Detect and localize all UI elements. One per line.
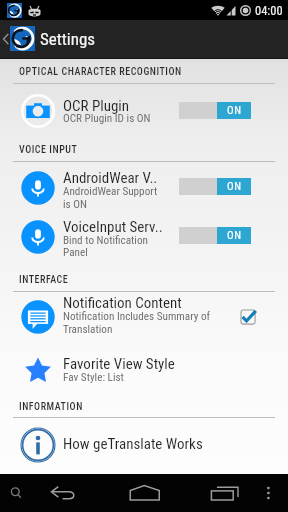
staticText: VoiceInput Serv.. — [63, 218, 163, 236]
staticText: OCR Plugin ID is ON — [63, 112, 151, 125]
button[interactable]: Home — [124, 474, 166, 512]
button[interactable] — [0, 211, 288, 261]
staticText: INTERFACE — [19, 274, 69, 286]
staticText: is ON — [63, 198, 87, 211]
staticText: OCR Plugin — [63, 97, 130, 115]
staticText: How geTranslate Works — [63, 435, 203, 453]
button[interactable]: Toggle setting — [179, 102, 251, 119]
button[interactable] — [0, 419, 288, 465]
button[interactable]: Navigate up — [0, 20, 288, 58]
staticText: Notification Content — [63, 294, 182, 312]
button[interactable] — [0, 163, 288, 211]
staticText: Fav Style: List — [63, 371, 124, 384]
button[interactable] — [0, 292, 288, 342]
staticText: AndroidWear V.. — [63, 169, 158, 187]
staticText: ON — [227, 180, 242, 193]
staticText: OPTICAL CHARACTER RECOGNITION — [19, 66, 182, 78]
staticText: 04:00 — [255, 3, 283, 18]
button[interactable]: Search — [0, 474, 40, 512]
staticText: AndroidWear Support — [63, 185, 158, 198]
button[interactable]: More options — [256, 474, 288, 512]
staticText: Panel — [63, 246, 88, 259]
button[interactable]: Toggle notification content — [233, 298, 263, 326]
staticText: ON — [227, 229, 242, 242]
button[interactable]: Toggle setting — [179, 227, 251, 244]
button[interactable] — [0, 345, 288, 395]
staticText: ON — [227, 104, 242, 117]
button[interactable]: Back — [44, 474, 84, 512]
staticText: Bind to Notification — [63, 234, 148, 247]
staticText: Settings — [40, 29, 96, 49]
staticText: VOICE INPUT — [19, 144, 78, 156]
button[interactable]: Toggle setting — [179, 178, 251, 195]
button[interactable]: Recent apps — [204, 474, 246, 512]
staticText: Translation — [63, 323, 113, 336]
staticText: INFORMATION — [19, 401, 83, 413]
staticText: Favorite View Style — [63, 355, 175, 373]
staticText: Notification Includes Summary of — [63, 310, 211, 323]
button[interactable] — [0, 86, 288, 136]
